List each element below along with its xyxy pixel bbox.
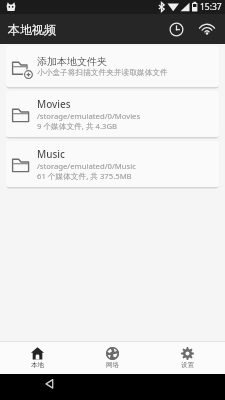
staticText: /storage/emulated/0/Music xyxy=(37,161,136,171)
button[interactable]: Movies xyxy=(6,91,219,137)
button[interactable]: 本地 xyxy=(0,342,75,374)
staticText: 网络 xyxy=(106,361,119,369)
button[interactable]: Cast xyxy=(191,14,223,44)
button[interactable]: 网络 xyxy=(75,342,150,374)
staticText: 小小盒子将扫描文件夹并读取媒体文件 xyxy=(37,68,168,78)
staticText: 9 个媒体文件, 共 4.3GB xyxy=(37,121,118,132)
staticText: 本地 xyxy=(31,361,44,369)
button[interactable]: Music xyxy=(6,141,219,187)
staticText: 15:37 xyxy=(200,1,222,13)
staticText: 61 个媒体文件, 共 375.5MB xyxy=(37,171,132,182)
button[interactable]: 添加本地文件夹 xyxy=(6,46,219,87)
staticText: Movies xyxy=(37,97,71,111)
staticText: 本地视频 xyxy=(8,22,56,37)
staticText: Music xyxy=(37,147,65,161)
staticText: 添加本地文件夹 xyxy=(37,55,107,68)
button[interactable]: 设置 xyxy=(150,342,225,374)
staticText: /storage/emulated/0/Movies xyxy=(37,111,141,121)
button[interactable]: History xyxy=(161,14,191,44)
staticText: 设置 xyxy=(181,361,194,369)
